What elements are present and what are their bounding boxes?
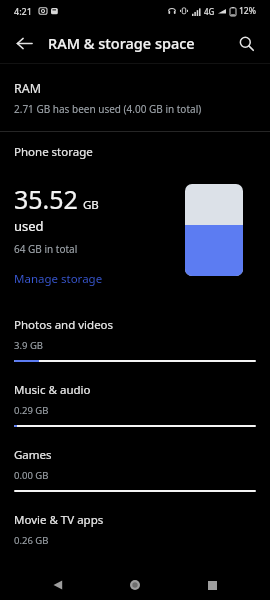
- staticText: Manage storage: [14, 271, 103, 287]
- staticText: RAM & storage space: [48, 33, 195, 53]
- staticText: 2.71 GB has been used (4.00 GB in total): [14, 102, 202, 116]
- staticText: 0.26 GB: [14, 534, 49, 547]
- staticText: Music & audio: [14, 382, 91, 398]
- staticText: 3.9 GB: [14, 339, 43, 352]
- button[interactable]: Recent apps: [196, 570, 228, 600]
- staticText: Movie & TV apps: [14, 512, 104, 528]
- staticText: 0.29 GB: [14, 404, 49, 417]
- staticText: Photos and videos: [14, 317, 114, 333]
- staticText: 35.52: [14, 182, 78, 216]
- staticText: Games: [14, 447, 52, 463]
- staticText: GB: [83, 197, 99, 213]
- button[interactable]: Back: [42, 570, 74, 600]
- button[interactable]: Photos and videos: [0, 307, 270, 372]
- button[interactable]: Music & audio: [0, 372, 270, 437]
- button[interactable]: Movie & TV apps: [0, 502, 270, 565]
- button[interactable]: Games: [0, 437, 270, 502]
- staticText: 12%: [239, 5, 256, 17]
- button[interactable]: Home: [119, 570, 151, 600]
- staticText: 0.00 GB: [14, 469, 49, 482]
- staticText: 64 GB in total: [14, 242, 78, 256]
- staticText: used: [14, 217, 44, 235]
- staticText: 4:21: [14, 5, 32, 17]
- staticText: Phone storage: [14, 144, 93, 160]
- button[interactable]: Back: [6, 25, 42, 61]
- button[interactable]: Manage storage: [14, 271, 103, 287]
- button[interactable]: RAM: [0, 64, 270, 130]
- staticText: RAM: [14, 80, 42, 97]
- staticText: 4G: [204, 6, 215, 17]
- button[interactable]: Search: [228, 25, 264, 61]
